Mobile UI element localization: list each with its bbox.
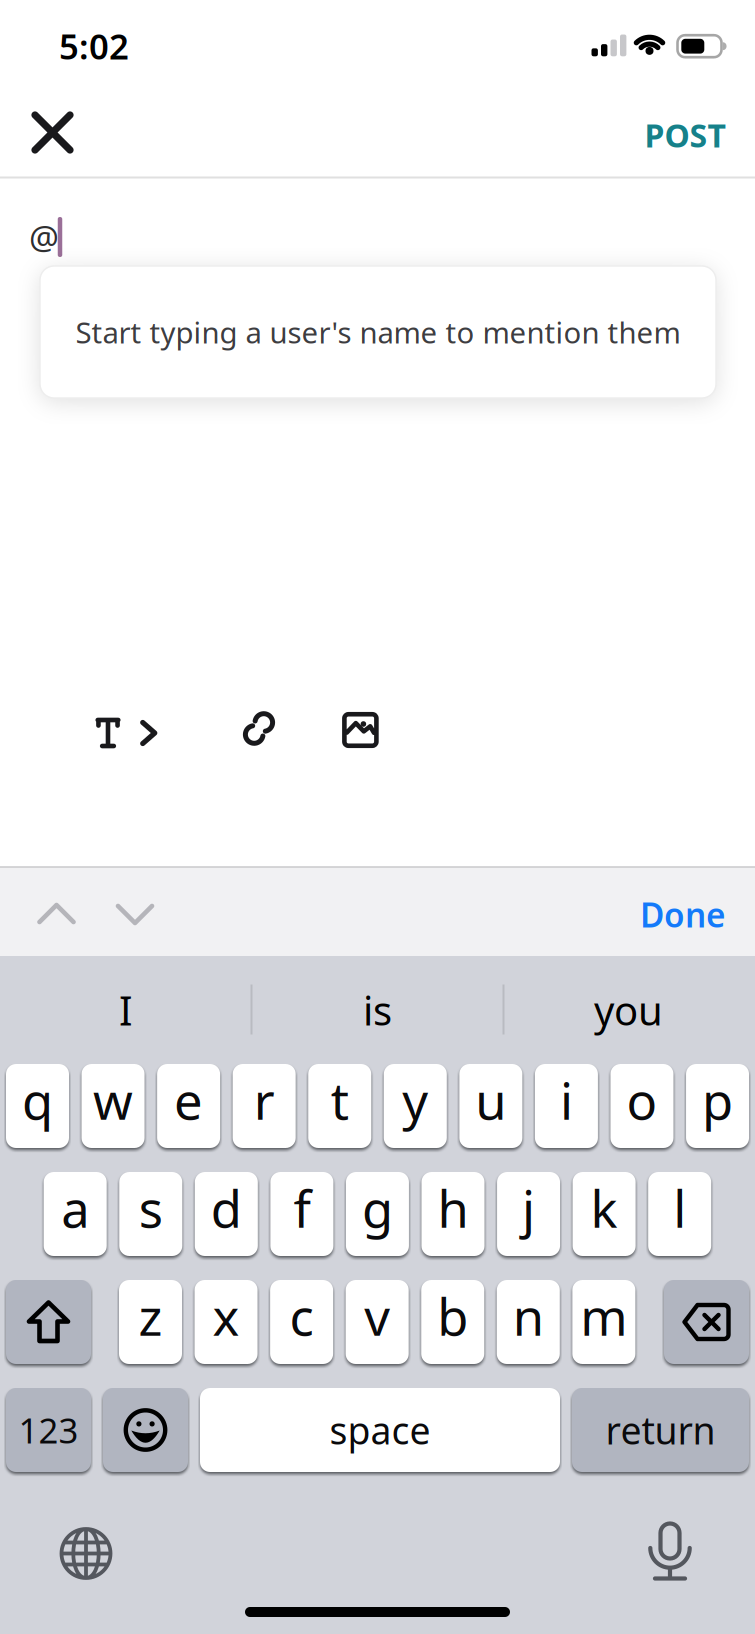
staticText: d bbox=[211, 1174, 242, 1242]
staticText: I bbox=[119, 983, 133, 1036]
button[interactable]: Emoji bbox=[103, 1388, 188, 1472]
staticText: n bbox=[513, 1282, 544, 1350]
staticText: return bbox=[605, 1405, 715, 1455]
staticText: POST bbox=[644, 114, 725, 156]
button[interactable]: g bbox=[346, 1172, 409, 1256]
staticText: e bbox=[174, 1066, 203, 1134]
button[interactable]: w bbox=[82, 1064, 145, 1148]
staticText: r bbox=[254, 1066, 275, 1134]
button[interactable]: t bbox=[308, 1064, 371, 1148]
staticText: is bbox=[363, 983, 392, 1036]
button[interactable]: r bbox=[233, 1064, 296, 1148]
staticText: you bbox=[594, 983, 663, 1036]
button[interactable]: j bbox=[497, 1172, 560, 1256]
button[interactable]: 123 bbox=[6, 1388, 91, 1472]
button[interactable]: Close bbox=[33, 113, 72, 152]
staticText: o bbox=[626, 1066, 657, 1134]
button[interactable]: Text formatting bbox=[96, 717, 157, 748]
button[interactable]: l bbox=[648, 1172, 711, 1256]
staticText: c bbox=[290, 1282, 314, 1350]
button[interactable]: Dictate bbox=[648, 1522, 692, 1580]
staticText: v bbox=[364, 1282, 390, 1350]
button[interactable]: return bbox=[572, 1388, 749, 1472]
staticText: p bbox=[702, 1066, 733, 1134]
button[interactable]: Previous field bbox=[37, 903, 75, 924]
button[interactable]: m bbox=[572, 1280, 635, 1364]
staticText: g bbox=[362, 1174, 393, 1242]
button[interactable]: u bbox=[459, 1064, 522, 1148]
button[interactable]: n bbox=[497, 1280, 560, 1364]
staticText: y bbox=[402, 1066, 428, 1134]
button[interactable]: Insert image bbox=[344, 714, 376, 746]
staticText: h bbox=[437, 1174, 468, 1242]
staticText: space bbox=[329, 1405, 430, 1455]
button[interactable]: o bbox=[610, 1064, 673, 1148]
button[interactable]: b bbox=[421, 1280, 484, 1364]
button[interactable]: p bbox=[686, 1064, 749, 1148]
staticText: w bbox=[93, 1066, 133, 1134]
button[interactable]: a bbox=[44, 1172, 107, 1256]
button[interactable]: y bbox=[384, 1064, 447, 1148]
staticText: 123 bbox=[18, 1407, 78, 1453]
button[interactable]: space bbox=[200, 1388, 560, 1472]
staticText: j bbox=[522, 1174, 535, 1242]
button[interactable]: POST bbox=[644, 114, 725, 156]
button[interactable]: z bbox=[119, 1280, 182, 1364]
button[interactable]: q bbox=[6, 1064, 69, 1148]
staticText: a bbox=[61, 1174, 89, 1242]
button[interactable]: i bbox=[535, 1064, 598, 1148]
staticText: x bbox=[213, 1282, 240, 1350]
staticText: f bbox=[293, 1174, 310, 1242]
staticText: m bbox=[580, 1282, 627, 1350]
button[interactable]: Delete bbox=[664, 1280, 749, 1364]
button[interactable]: s bbox=[119, 1172, 182, 1256]
button[interactable]: v bbox=[346, 1280, 409, 1364]
button[interactable]: d bbox=[195, 1172, 258, 1256]
staticText: Done bbox=[640, 892, 726, 937]
button[interactable]: c bbox=[270, 1280, 333, 1364]
button[interactable]: Shift bbox=[6, 1280, 91, 1364]
staticText: u bbox=[475, 1066, 506, 1134]
button[interactable]: Next keyboard bbox=[59, 1527, 112, 1580]
button[interactable]: k bbox=[573, 1172, 636, 1256]
button[interactable]: f bbox=[270, 1172, 333, 1256]
button[interactable]: you bbox=[518, 975, 738, 1045]
staticText: i bbox=[560, 1066, 573, 1134]
staticText: l bbox=[673, 1174, 686, 1242]
staticText: @ bbox=[29, 215, 59, 259]
staticText: k bbox=[591, 1174, 618, 1242]
button[interactable]: x bbox=[195, 1280, 258, 1364]
staticText: 5:02 bbox=[59, 23, 129, 69]
button[interactable]: Next field bbox=[116, 904, 154, 925]
button[interactable]: e bbox=[157, 1064, 220, 1148]
button[interactable]: is bbox=[267, 975, 487, 1045]
staticText: t bbox=[331, 1066, 349, 1134]
staticText: b bbox=[437, 1282, 468, 1350]
button[interactable]: Insert link bbox=[240, 708, 278, 748]
staticText: z bbox=[138, 1282, 162, 1350]
staticText: q bbox=[22, 1066, 53, 1134]
button[interactable]: h bbox=[421, 1172, 484, 1256]
button[interactable]: Done bbox=[640, 892, 726, 937]
staticText: s bbox=[139, 1174, 163, 1242]
button[interactable]: I bbox=[16, 975, 236, 1045]
staticText: Start typing a user's name to mention th… bbox=[75, 312, 680, 351]
